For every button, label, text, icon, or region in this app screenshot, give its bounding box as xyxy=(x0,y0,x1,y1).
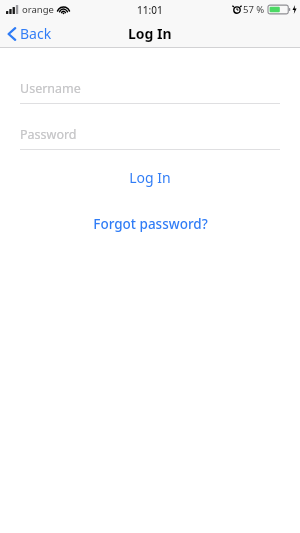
staticText: orange xyxy=(22,3,54,16)
staticText: Back xyxy=(20,24,52,43)
staticText: Username xyxy=(20,80,81,97)
other: Back xyxy=(7,26,17,42)
staticText: 57 % xyxy=(243,3,265,16)
staticText: Forgot password? xyxy=(93,215,208,233)
staticText: 11:01 xyxy=(137,3,163,17)
staticText: Password xyxy=(20,126,77,143)
staticText: Log In xyxy=(129,168,171,187)
button[interactable]: Username xyxy=(20,79,280,104)
button[interactable]: Log In xyxy=(0,163,300,191)
button[interactable]: Back xyxy=(7,24,52,43)
button[interactable]: Password xyxy=(20,125,280,150)
staticText: Log In xyxy=(128,24,172,43)
button[interactable]: Forgot password? xyxy=(0,210,300,238)
